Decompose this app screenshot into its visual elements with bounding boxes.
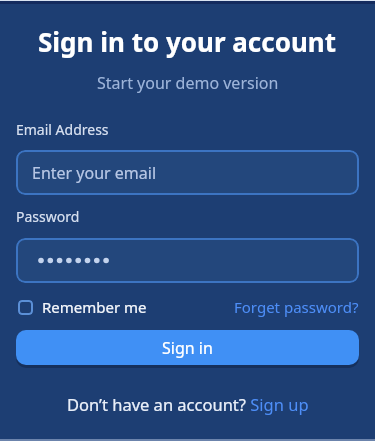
staticText: Don’t have an account? Sign up [67,393,309,415]
button[interactable]: Forget password? [234,297,359,317]
button[interactable]: Sign in [16,330,359,365]
button[interactable]: Don’t have an account? Sign up [0,393,375,415]
staticText: Email Address [16,120,109,139]
button[interactable] [16,238,359,283]
staticText: Password [16,207,80,226]
staticText: Start your demo version [97,72,279,94]
staticText: Remember me [42,297,147,317]
button[interactable]: Remember me [16,297,147,317]
staticText: Sign in to your account [38,24,337,59]
button[interactable]: Enter your email [16,150,359,195]
staticText: Sign in [162,337,213,359]
staticText: Enter your email [32,162,157,184]
